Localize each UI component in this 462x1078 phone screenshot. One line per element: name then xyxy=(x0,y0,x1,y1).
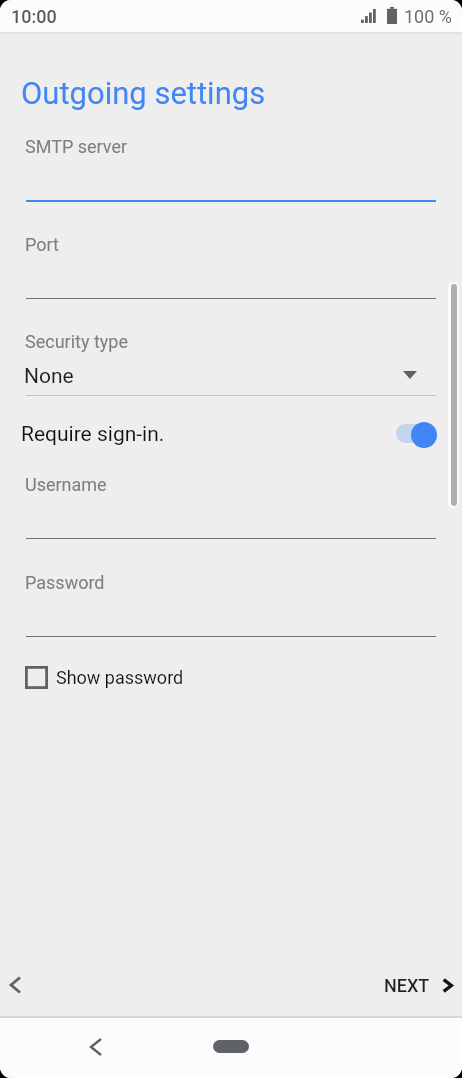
button[interactable]: Require sign-in. xyxy=(0,410,462,456)
staticText: Username xyxy=(25,474,107,495)
staticText: Password xyxy=(25,572,105,593)
staticText: SMTP server xyxy=(25,136,128,157)
staticText: 10:00 xyxy=(11,6,57,27)
staticText: Security type xyxy=(25,331,128,352)
button[interactable]: None xyxy=(0,358,462,392)
staticText: 100 % xyxy=(404,6,452,27)
staticText: Outgoing settings xyxy=(21,75,266,111)
staticText: None xyxy=(24,364,74,389)
staticText: Require sign-in. xyxy=(21,422,165,447)
button[interactable]: NEXT xyxy=(376,963,461,1007)
staticText: NEXT xyxy=(384,975,430,996)
button[interactable]: Show password xyxy=(18,658,184,696)
button[interactable]: Back xyxy=(1,963,30,1007)
button[interactable]: Back xyxy=(74,1025,118,1069)
staticText: Port xyxy=(25,234,59,255)
staticText: Show password xyxy=(56,667,184,688)
button[interactable]: Home xyxy=(213,1040,249,1053)
